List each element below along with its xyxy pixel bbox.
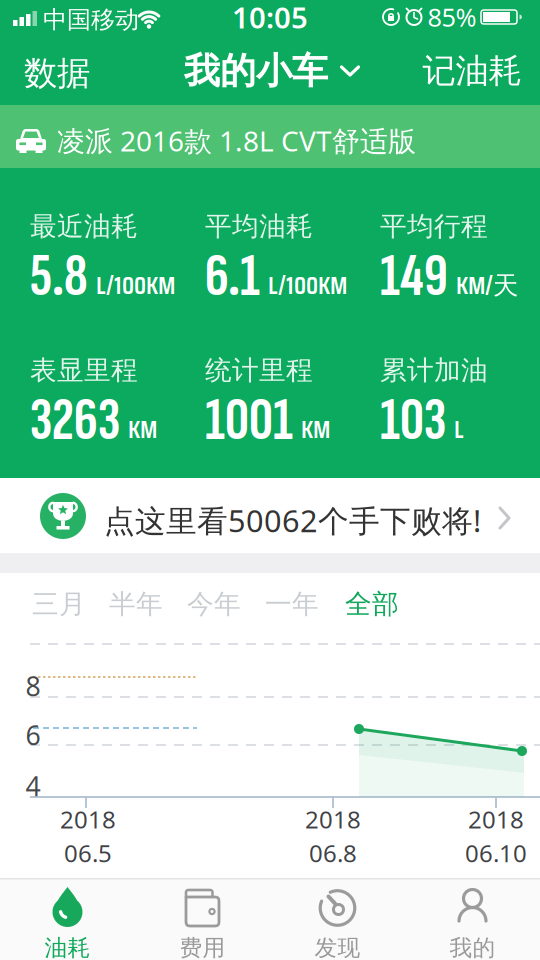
staticText: 06.10 (465, 837, 527, 869)
staticText: 06.5 (64, 837, 112, 869)
staticText: 85% (427, 0, 476, 34)
staticText: 表显里程 (30, 354, 138, 387)
staticText: 1001 (205, 385, 293, 457)
staticText: 全部 (345, 588, 399, 620)
button[interactable]: 我的 (405, 878, 540, 960)
staticText: 费用 (179, 934, 225, 960)
button[interactable]: 记油耗 (422, 50, 521, 91)
staticText: 6 (25, 717, 40, 753)
staticText: 6.1 (205, 241, 260, 313)
staticText: 发现 (314, 934, 360, 960)
staticText: L (454, 409, 464, 449)
staticText: 一年 (265, 588, 319, 620)
staticText: KM/天 (456, 265, 518, 305)
staticText: 我的 (449, 934, 495, 960)
staticText: 103 (380, 385, 446, 457)
button[interactable]: 三月 (32, 588, 86, 620)
staticText: L/100KM (96, 265, 175, 305)
staticText: 中国移动 (43, 5, 139, 34)
staticText: 我的小车 (184, 49, 328, 93)
button[interactable]: 凌派 2016款 1.8L CVT舒适版 (0, 105, 540, 168)
button[interactable]: 今年 (187, 588, 241, 620)
staticText: 油耗 (44, 934, 90, 960)
staticText: 凌派 2016款 1.8L CVT舒适版 (57, 122, 416, 159)
staticText: KM (128, 409, 157, 449)
staticText: 数据 (24, 53, 90, 94)
staticText: 2018 (305, 803, 361, 835)
staticText: 5.8 (30, 241, 88, 313)
staticText: 点这里看50062个手下败将! (104, 500, 481, 541)
button[interactable]: 我的小车 (184, 49, 360, 93)
staticText: 记油耗 (422, 50, 521, 91)
staticText: 8 (25, 668, 40, 704)
button[interactable]: 发现 (270, 878, 405, 960)
staticText: 149 (380, 241, 448, 313)
button[interactable]: 半年 (109, 588, 163, 620)
button[interactable]: 一年 (265, 588, 319, 620)
staticText: 最近油耗 (30, 210, 138, 243)
staticText: 平均油耗 (205, 210, 313, 243)
staticText: L/100KM (268, 265, 347, 305)
button[interactable]: 全部 (345, 588, 399, 620)
staticText: 4 (25, 768, 40, 804)
staticText: 累计加油 (380, 354, 488, 387)
staticText: 三月 (32, 588, 86, 620)
staticText: 10:05 (232, 0, 308, 36)
staticText: 2018 (468, 803, 524, 835)
button[interactable]: 费用 (135, 878, 270, 960)
staticText: 2018 (60, 803, 116, 835)
staticText: KM (301, 409, 330, 449)
button[interactable]: 油耗 (0, 878, 135, 960)
staticText: 统计里程 (205, 354, 313, 387)
staticText: 半年 (109, 588, 163, 620)
staticText: 06.8 (309, 837, 357, 869)
staticText: 今年 (187, 588, 241, 620)
staticText: 平均行程 (380, 210, 488, 243)
button[interactable]: 点这里看50062个手下败将! (0, 478, 540, 553)
staticText: 3263 (30, 385, 120, 457)
button[interactable]: 数据 (24, 53, 90, 94)
